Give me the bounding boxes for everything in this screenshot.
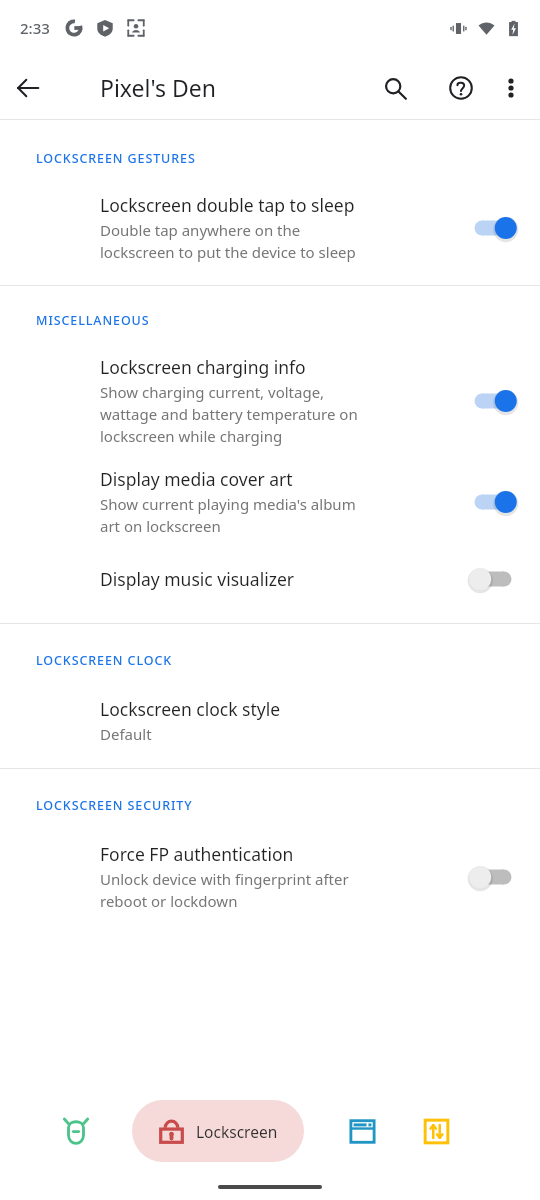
button[interactable]: Lockscreen clock style xyxy=(0,697,540,744)
button[interactable]: Display music visualizer xyxy=(0,561,540,597)
button[interactable]: Lockscreen double tap to sleep xyxy=(0,193,540,263)
button[interactable]: Enabled xyxy=(466,484,520,520)
staticText: Lockscreen charging info xyxy=(100,355,306,379)
staticText: Lockscreen clock style xyxy=(100,697,281,721)
staticText: LOCKSCREEN GESTURES xyxy=(36,150,196,167)
staticText: Default xyxy=(100,724,152,744)
button[interactable]: Display media cover art xyxy=(0,467,540,537)
button[interactable]: Search xyxy=(370,63,420,113)
button[interactable]: System xyxy=(52,1107,100,1155)
button[interactable]: Lockscreen xyxy=(132,1100,304,1162)
button[interactable]: Back xyxy=(0,60,56,116)
staticText: Force FP authentication xyxy=(100,842,294,866)
staticText: Pixel's Den xyxy=(100,72,216,103)
staticText: LOCKSCREEN CLOCK xyxy=(36,652,173,669)
button[interactable]: Enabled xyxy=(466,383,520,419)
button[interactable]: Help xyxy=(436,63,486,113)
staticText: Show current playing media's album art o… xyxy=(100,494,356,537)
staticText: Lockscreen double tap to sleep xyxy=(100,193,355,217)
staticText: Lockscreen xyxy=(196,1121,278,1142)
staticText: Unlock device with fingerprint after reb… xyxy=(100,869,349,912)
button[interactable]: More options xyxy=(488,65,534,111)
staticText: Double tap anywhere on the lockscreen to… xyxy=(100,220,356,263)
staticText: Display music visualizer xyxy=(100,567,295,591)
staticText: 2:33 xyxy=(20,18,50,38)
staticText: LOCKSCREEN SECURITY xyxy=(36,797,193,814)
button[interactable]: Force FP authentication xyxy=(0,842,540,912)
staticText: Show charging current, voltage, wattage … xyxy=(100,382,358,447)
button[interactable]: Tuner xyxy=(412,1107,460,1155)
staticText: MISCELLANEOUS xyxy=(36,312,150,329)
button[interactable]: Statusbar xyxy=(338,1107,386,1155)
staticText: Display media cover art xyxy=(100,467,293,491)
button[interactable]: Lockscreen charging info xyxy=(0,355,540,447)
button[interactable]: Disabled xyxy=(466,561,520,597)
button[interactable]: Enabled xyxy=(466,210,520,246)
button[interactable]: Disabled xyxy=(466,859,520,895)
